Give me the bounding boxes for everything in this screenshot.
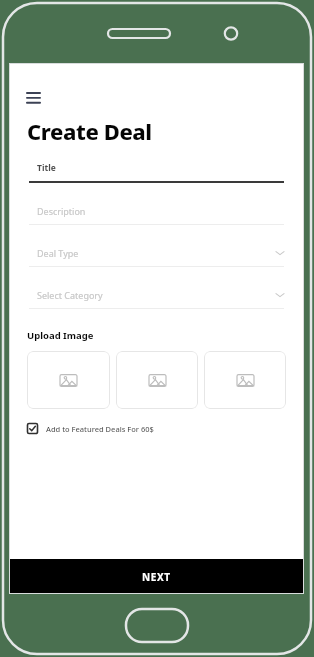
staticText: Title [37, 162, 284, 174]
staticText: Description [37, 205, 284, 217]
staticText: Select Category [37, 289, 276, 301]
button[interactable]: NEXT [9, 559, 304, 594]
button[interactable]: Upload image [204, 351, 286, 409]
staticText: NEXT [142, 570, 171, 584]
staticText: Deal Type [37, 247, 276, 259]
button[interactable]: Upload image [27, 351, 110, 409]
button[interactable]: Select Category [29, 289, 284, 309]
button[interactable]: Upload image [116, 351, 198, 409]
button[interactable]: Deal Type [29, 247, 284, 267]
button[interactable]: Add to Featured Deals For 60$ [27, 423, 154, 434]
button[interactable]: Description [29, 205, 284, 225]
button[interactable]: Menu [19, 84, 47, 112]
button[interactable]: Title [29, 162, 284, 183]
staticText: Create Deal [27, 116, 152, 146]
staticText: Upload Image [27, 329, 94, 342]
staticText: Add to Featured Deals For 60$ [46, 424, 154, 434]
